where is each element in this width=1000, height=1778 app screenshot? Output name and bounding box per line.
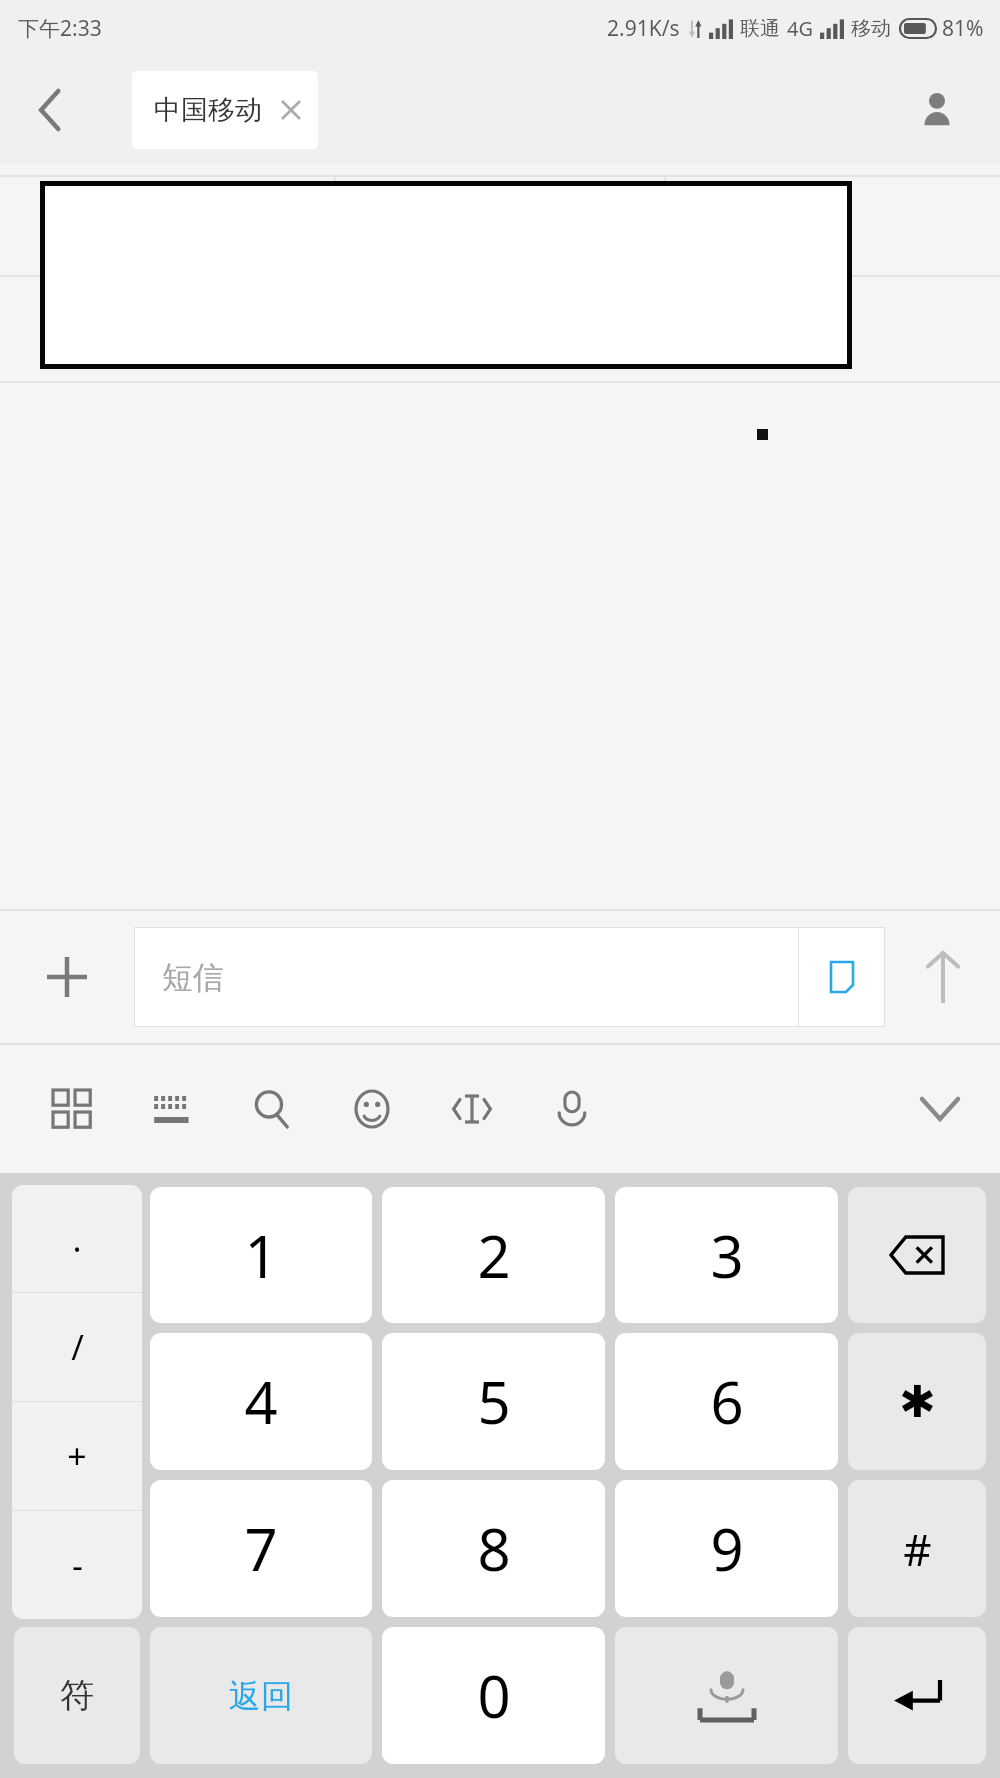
staticText: .	[72, 1216, 82, 1262]
staticText: 移动	[851, 16, 891, 41]
button[interactable]: Move cursor	[422, 1045, 522, 1173]
button[interactable]: 8	[382, 1480, 605, 1617]
button[interactable]: -	[12, 1511, 142, 1619]
button[interactable]: 4	[150, 1333, 372, 1470]
button[interactable]: Send	[885, 911, 1000, 1043]
button[interactable]: ✱	[848, 1333, 986, 1470]
button[interactable]: SIM card	[799, 927, 885, 1027]
button[interactable]: Emoji	[322, 1045, 422, 1173]
staticText: 4	[244, 1362, 278, 1441]
button[interactable]: 5	[382, 1333, 605, 1470]
button[interactable]: /	[12, 1293, 142, 1401]
staticText: 6	[710, 1362, 744, 1441]
staticText: 5	[477, 1362, 511, 1441]
staticText: 符	[60, 1674, 94, 1717]
button[interactable]: 符	[14, 1627, 140, 1764]
staticText: 下午2:33	[18, 14, 102, 43]
button[interactable]: Enter	[848, 1627, 986, 1764]
button[interactable]: Backspace	[848, 1187, 986, 1323]
button[interactable]: Voice input	[522, 1045, 622, 1173]
button[interactable]: #	[848, 1480, 986, 1617]
button[interactable]: 2	[382, 1187, 605, 1323]
button[interactable]: 6	[615, 1333, 838, 1470]
button[interactable]: 7	[150, 1480, 372, 1617]
staticText: 7	[244, 1509, 278, 1588]
button[interactable]: Space, voice input	[615, 1627, 838, 1764]
staticText: 2	[477, 1216, 511, 1295]
staticText: -	[72, 1542, 83, 1588]
button[interactable]: 3	[615, 1187, 838, 1323]
button[interactable]: Hide keyboard	[880, 1045, 1000, 1173]
staticText: 9	[710, 1509, 744, 1588]
button[interactable]: 短信	[134, 927, 798, 1027]
staticText: 81%	[942, 14, 984, 43]
staticText: 返回	[229, 1676, 293, 1716]
staticText: 4G	[787, 15, 813, 42]
staticText: +	[67, 1433, 87, 1479]
button[interactable]: Contact info	[906, 79, 968, 141]
button[interactable]: 返回	[150, 1627, 372, 1764]
button[interactable]: Keyboard layouts	[22, 1045, 122, 1173]
staticText: 1	[244, 1216, 278, 1295]
button[interactable]: 1	[150, 1187, 372, 1323]
staticText: ✱	[899, 1376, 936, 1427]
button[interactable]: 0	[382, 1627, 605, 1764]
staticText: 短信	[162, 958, 224, 997]
button[interactable]: .	[12, 1185, 142, 1292]
staticText: 8	[477, 1509, 511, 1588]
button[interactable]: Add attachment	[0, 911, 134, 1043]
button[interactable]: 9	[615, 1480, 838, 1617]
button[interactable]: Back	[20, 79, 82, 141]
staticText: #	[903, 1519, 932, 1579]
staticText: 2.91K/s	[607, 14, 680, 43]
staticText: 中国移动	[154, 93, 262, 127]
staticText: 联通	[740, 16, 780, 41]
button[interactable]: Search	[222, 1045, 322, 1173]
button[interactable]: +	[12, 1402, 142, 1510]
staticText: 3	[710, 1216, 744, 1295]
staticText: 0	[477, 1656, 511, 1735]
button[interactable]: 中国移动	[132, 71, 318, 149]
button[interactable]: Keyboard	[122, 1045, 222, 1173]
staticText: /	[71, 1324, 84, 1370]
